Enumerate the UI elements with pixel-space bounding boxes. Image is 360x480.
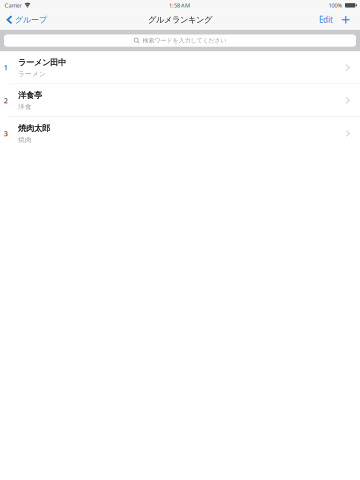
button[interactable]: 検索ワードを入力してください <box>0 30 360 51</box>
staticText: 洋食亭 <box>18 90 42 100</box>
staticText: 3 <box>4 128 8 138</box>
staticText: グループ <box>15 15 47 25</box>
staticText: 焼肉 <box>18 136 32 144</box>
staticText: 洋食 <box>18 103 32 111</box>
button[interactable]: 2 <box>0 84 360 117</box>
button[interactable]: グループ <box>0 11 54 29</box>
button[interactable]: 1 <box>0 51 360 84</box>
staticText: ラーメン田中 <box>18 57 66 68</box>
staticText: 2 <box>4 95 8 105</box>
staticText: 1 <box>4 63 8 72</box>
button[interactable]: 3 <box>0 117 360 150</box>
staticText: 検索ワードを入力してください <box>142 37 226 44</box>
button[interactable]: Add <box>339 11 353 29</box>
staticText: Edit <box>319 14 333 25</box>
button[interactable]: Edit <box>315 11 334 29</box>
staticText: Carrier <box>4 1 21 9</box>
staticText: 100% <box>328 1 342 9</box>
staticText: 1:58 AM <box>169 1 190 9</box>
staticText: 焼肉太郎 <box>18 123 50 133</box>
staticText: ラーメン <box>18 70 46 78</box>
staticText: グルメランキング <box>148 14 212 25</box>
